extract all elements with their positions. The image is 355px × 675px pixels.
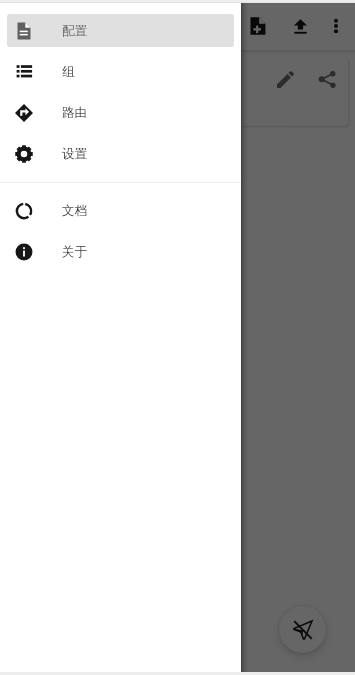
- staticText: 设置: [62, 146, 87, 162]
- button[interactable]: New note: [240, 8, 276, 44]
- button[interactable]: 关于: [7, 235, 234, 268]
- button[interactable]: 组: [7, 55, 234, 88]
- staticText: 配置: [62, 23, 87, 39]
- staticText: 文档: [62, 203, 87, 219]
- staticText: 组: [62, 64, 75, 80]
- button[interactable]: More options: [318, 8, 354, 44]
- button[interactable]: Stop navigation: [279, 606, 326, 653]
- button[interactable]: 配置: [7, 14, 234, 47]
- button[interactable]: 路由: [7, 96, 234, 129]
- button[interactable]: Edit: [270, 64, 300, 94]
- staticText: 路由: [62, 105, 87, 121]
- button[interactable]: 文档: [7, 194, 234, 227]
- button[interactable]: Edit: [8, 58, 348, 126]
- button[interactable]: Upload: [282, 8, 318, 44]
- staticText: 关于: [62, 244, 87, 260]
- button[interactable]: Share: [312, 64, 342, 94]
- button[interactable]: 设置: [7, 137, 234, 170]
